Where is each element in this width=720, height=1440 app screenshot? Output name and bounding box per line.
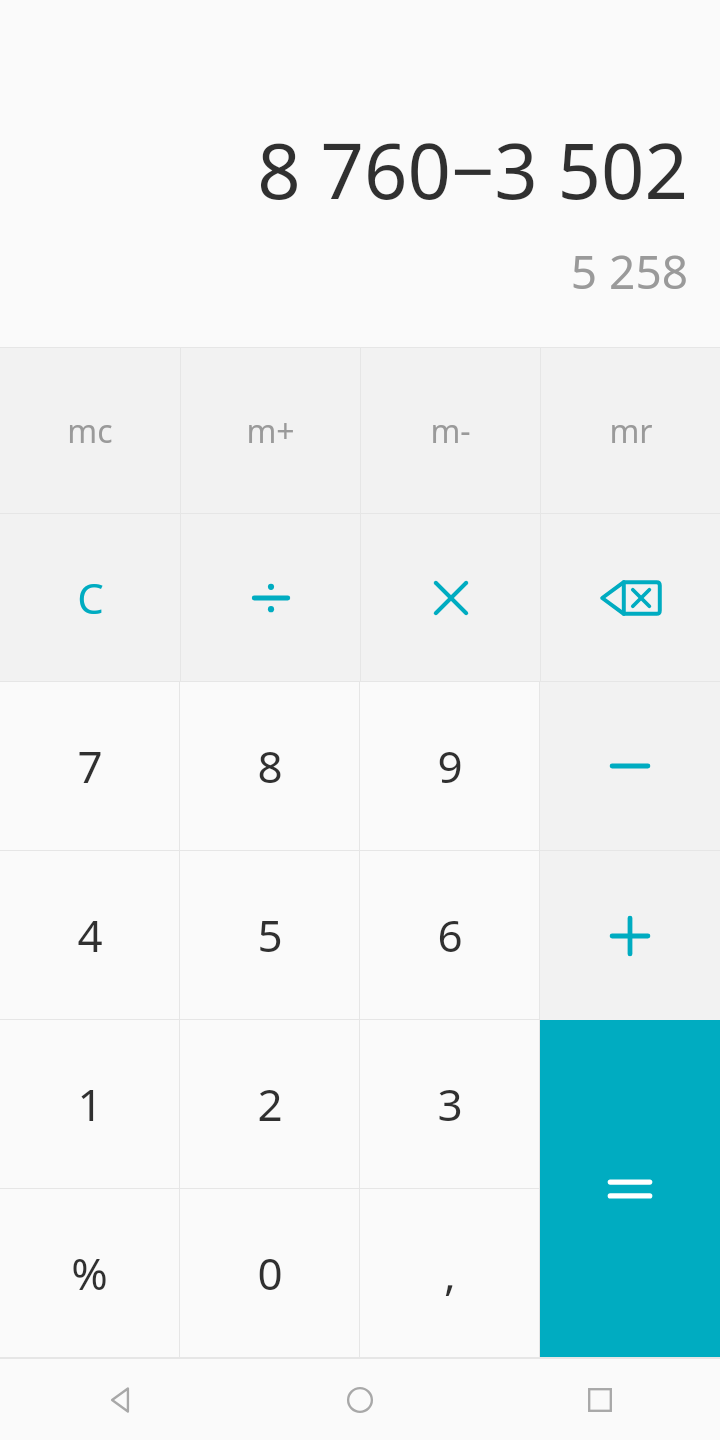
button[interactable]: 4: [0, 851, 179, 1019]
staticText: %: [71, 1243, 108, 1303]
button[interactable]: 9: [360, 682, 539, 850]
staticText: ,: [444, 1243, 456, 1303]
button[interactable]: Multiply: [361, 514, 540, 681]
staticText: 3: [437, 1074, 463, 1134]
button[interactable]: Equals: [540, 1020, 720, 1357]
staticText: 2: [257, 1074, 283, 1134]
button[interactable]: ,: [360, 1189, 539, 1357]
button[interactable]: 6: [360, 851, 539, 1019]
staticText: 9: [437, 736, 463, 796]
staticText: 1: [77, 1074, 103, 1134]
button[interactable]: mc: [0, 348, 180, 513]
staticText: m-: [430, 409, 471, 453]
button[interactable]: mr: [541, 348, 720, 513]
button[interactable]: 0: [180, 1189, 359, 1357]
staticText: 0: [257, 1243, 283, 1303]
button[interactable]: m-: [361, 348, 540, 513]
staticText: 4: [77, 905, 103, 965]
button[interactable]: Backspace: [541, 514, 720, 681]
staticText: 5: [257, 905, 283, 965]
staticText: C: [77, 569, 104, 626]
button[interactable]: m+: [181, 348, 360, 513]
staticText: mc: [67, 409, 113, 453]
staticText: 5 258: [570, 240, 688, 303]
button[interactable]: 1: [0, 1020, 179, 1188]
button[interactable]: Minus: [540, 682, 720, 850]
button[interactable]: Plus: [540, 851, 720, 1020]
staticText: 8 760−3 502: [257, 118, 688, 222]
staticText: 8: [257, 736, 283, 796]
button[interactable]: Recents: [560, 1360, 640, 1440]
staticText: 7: [77, 736, 103, 796]
button[interactable]: 8: [180, 682, 359, 850]
staticText: 6: [437, 905, 463, 965]
button[interactable]: %: [0, 1189, 179, 1357]
button[interactable]: 7: [0, 682, 179, 850]
button[interactable]: Divide: [181, 514, 360, 681]
button[interactable]: 3: [360, 1020, 539, 1188]
staticText: m+: [246, 409, 295, 453]
staticText: mr: [609, 409, 653, 453]
button[interactable]: C: [0, 514, 180, 681]
button[interactable]: Home: [320, 1360, 400, 1440]
button[interactable]: 2: [180, 1020, 359, 1188]
button[interactable]: Back: [80, 1360, 160, 1440]
button[interactable]: 5: [180, 851, 359, 1019]
